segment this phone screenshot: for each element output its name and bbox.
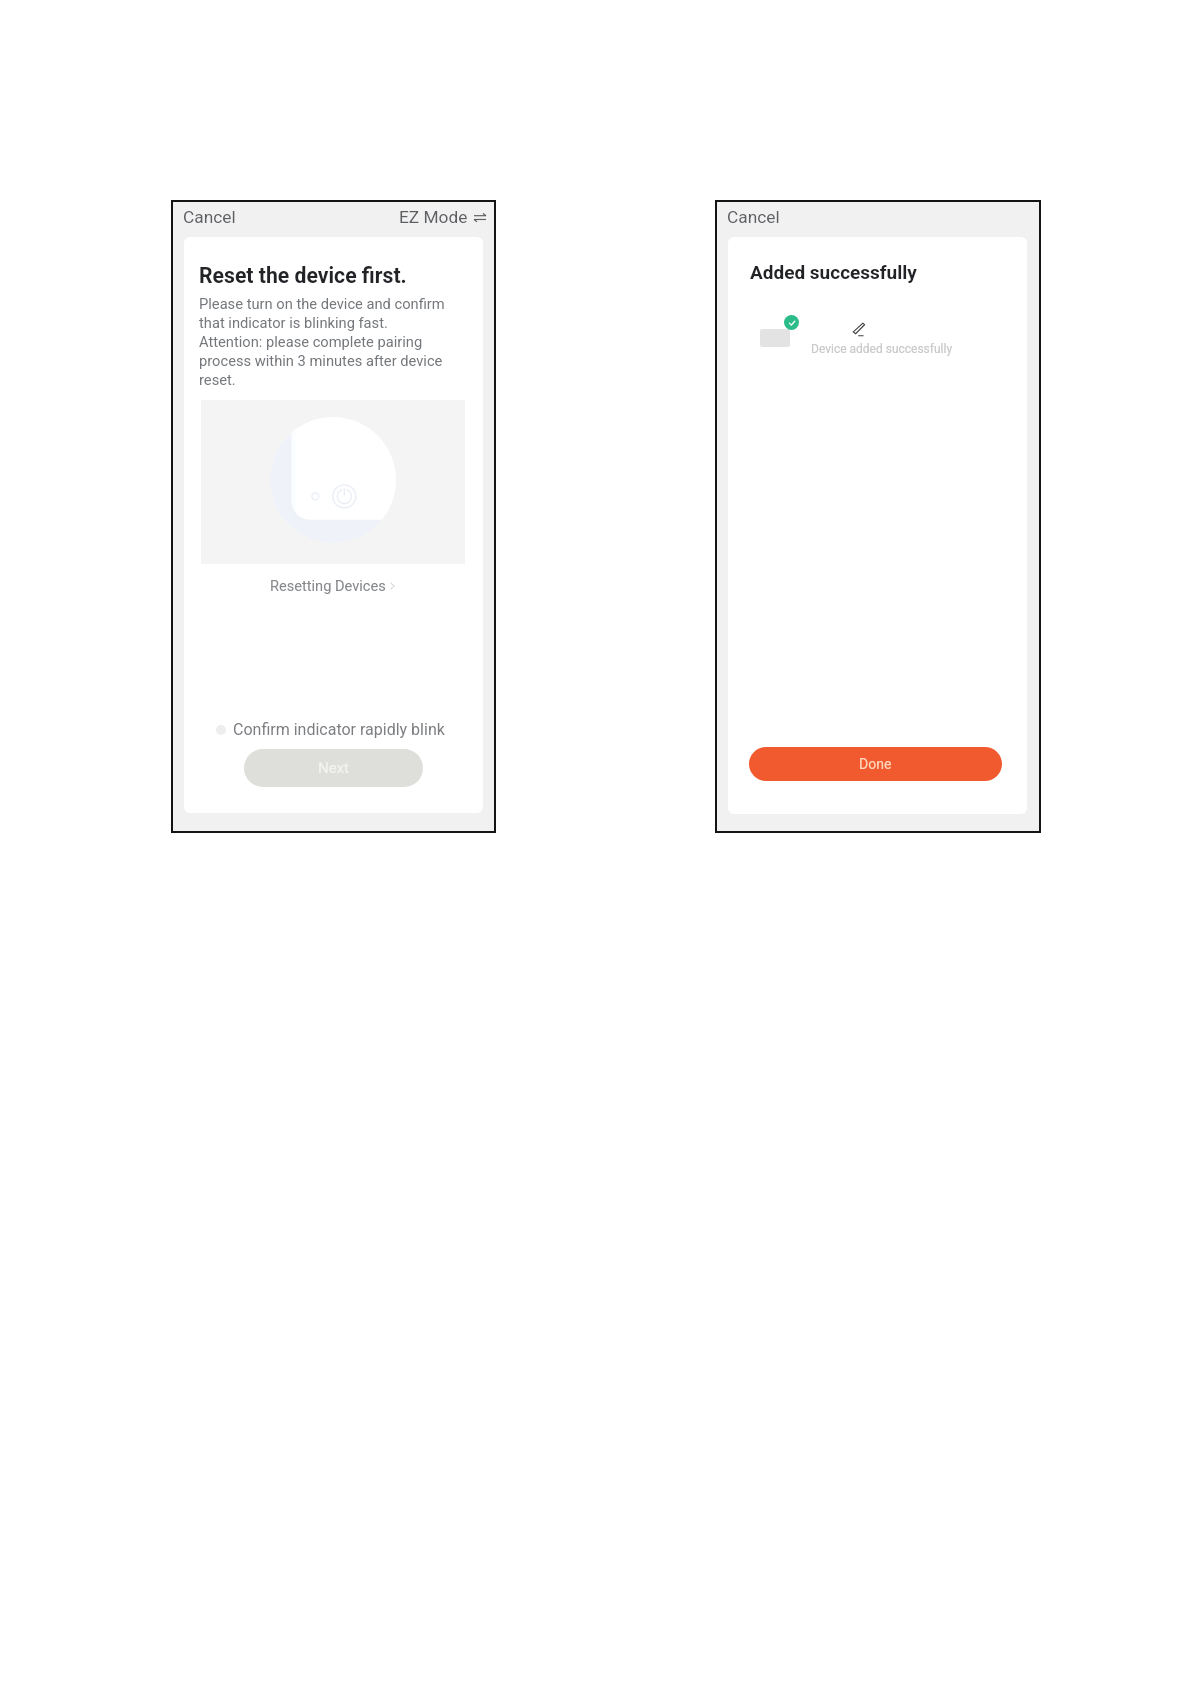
staticText: EZ Mode — [399, 207, 468, 227]
staticText: Device added successfully — [811, 342, 953, 356]
staticText: Resetting Devices — [270, 577, 386, 594]
staticText: Next — [318, 759, 350, 777]
button[interactable]: Cancel — [183, 207, 236, 227]
button[interactable]: Cancel — [727, 207, 780, 227]
button[interactable]: EZ Mode — [399, 207, 486, 227]
staticText: Confirm indicator rapidly blink — [233, 720, 445, 739]
button[interactable]: Resetting Devices — [270, 577, 395, 594]
other: Switch pairing mode — [474, 213, 486, 222]
staticText: Done — [859, 756, 892, 772]
other: Rename device — [850, 322, 865, 337]
staticText: Reset the device first. — [199, 263, 407, 288]
button[interactable]: Rename device — [850, 322, 865, 337]
staticText: Added successfully — [750, 261, 917, 283]
staticText: Please turn on the device and confirm th… — [199, 295, 445, 388]
button[interactable]: Next — [244, 749, 423, 787]
staticText: Cancel — [183, 207, 236, 227]
button[interactable]: Confirm indicator rapidly blink — [216, 720, 445, 739]
staticText: Cancel — [727, 207, 780, 227]
button[interactable]: Done — [749, 747, 1002, 781]
